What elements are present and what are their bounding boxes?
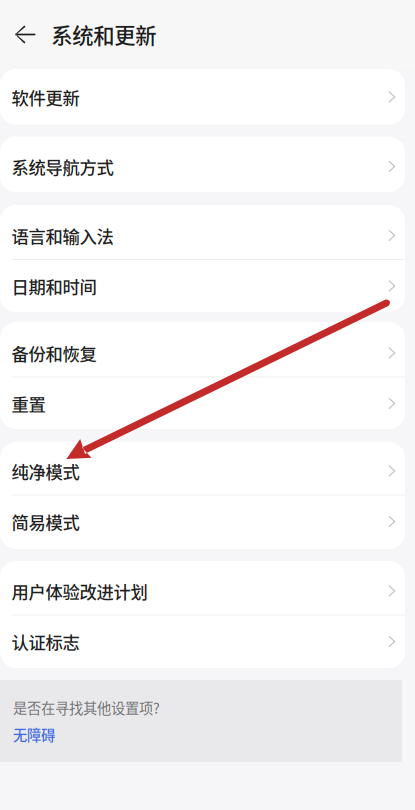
staticText: 日期和时间: [11, 274, 96, 299]
button[interactable]: 系统导航方式: [0, 140, 405, 190]
button[interactable]: 纯净模式: [0, 445, 405, 494]
button[interactable]: 日期和时间: [0, 260, 405, 309]
staticText: 无障碍: [13, 724, 55, 745]
staticText: 软件更新: [11, 85, 79, 110]
staticText: 是否在寻找其他设置项?: [13, 697, 160, 718]
button[interactable]: 重置: [0, 377, 405, 427]
button[interactable]: 认证标志: [0, 615, 405, 665]
button[interactable]: 软件更新: [0, 71, 405, 120]
staticText: 系统导航方式: [11, 154, 113, 179]
staticText: 语言和输入法: [11, 223, 113, 248]
button[interactable]: 备份和恢复: [0, 327, 405, 376]
staticText: 简易模式: [11, 509, 79, 534]
button[interactable]: 简易模式: [0, 495, 405, 545]
button[interactable]: 无障碍: [13, 725, 55, 744]
button[interactable]: 用户体验改进计划: [0, 565, 405, 614]
staticText: 认证标志: [11, 629, 79, 654]
staticText: 重置: [11, 391, 45, 416]
button[interactable]: 语言和输入法: [0, 209, 405, 259]
staticText: 系统和更新: [51, 19, 156, 50]
staticText: 用户体验改进计划: [11, 579, 147, 604]
staticText: 纯净模式: [11, 459, 79, 484]
staticText: 备份和恢复: [11, 341, 96, 366]
button[interactable]: Back: [0, 8, 51, 60]
